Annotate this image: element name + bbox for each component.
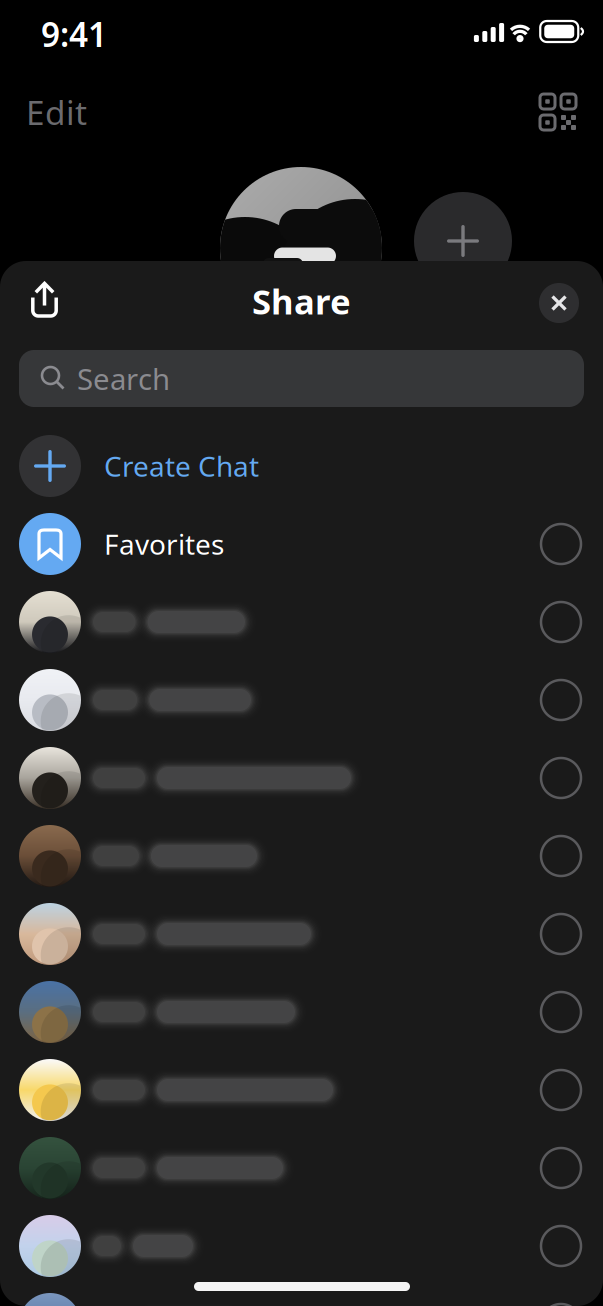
button[interactable]: Close xyxy=(539,283,579,323)
button[interactable] xyxy=(0,1285,603,1306)
staticText: Create Chat xyxy=(104,447,259,485)
staticText: Edit xyxy=(26,90,87,134)
button[interactable] xyxy=(0,1129,603,1207)
button[interactable] xyxy=(0,895,603,973)
button[interactable]: Favorites xyxy=(0,505,603,583)
button[interactable]: Edit xyxy=(26,88,87,136)
button[interactable]: Search xyxy=(19,350,584,407)
button[interactable] xyxy=(0,583,603,661)
button[interactable]: QR code xyxy=(540,94,576,130)
button[interactable] xyxy=(0,739,603,817)
staticText: Favorites xyxy=(104,525,224,563)
button[interactable] xyxy=(0,973,603,1051)
button[interactable]: Create Chat xyxy=(0,427,603,505)
staticText: Share xyxy=(252,278,351,324)
button[interactable] xyxy=(0,1207,603,1285)
staticText: Search xyxy=(77,359,170,398)
button[interactable]: Share xyxy=(31,281,58,318)
button[interactable] xyxy=(0,1051,603,1129)
button[interactable] xyxy=(0,817,603,895)
staticText: 9:41 xyxy=(41,12,107,56)
button[interactable] xyxy=(0,661,603,739)
